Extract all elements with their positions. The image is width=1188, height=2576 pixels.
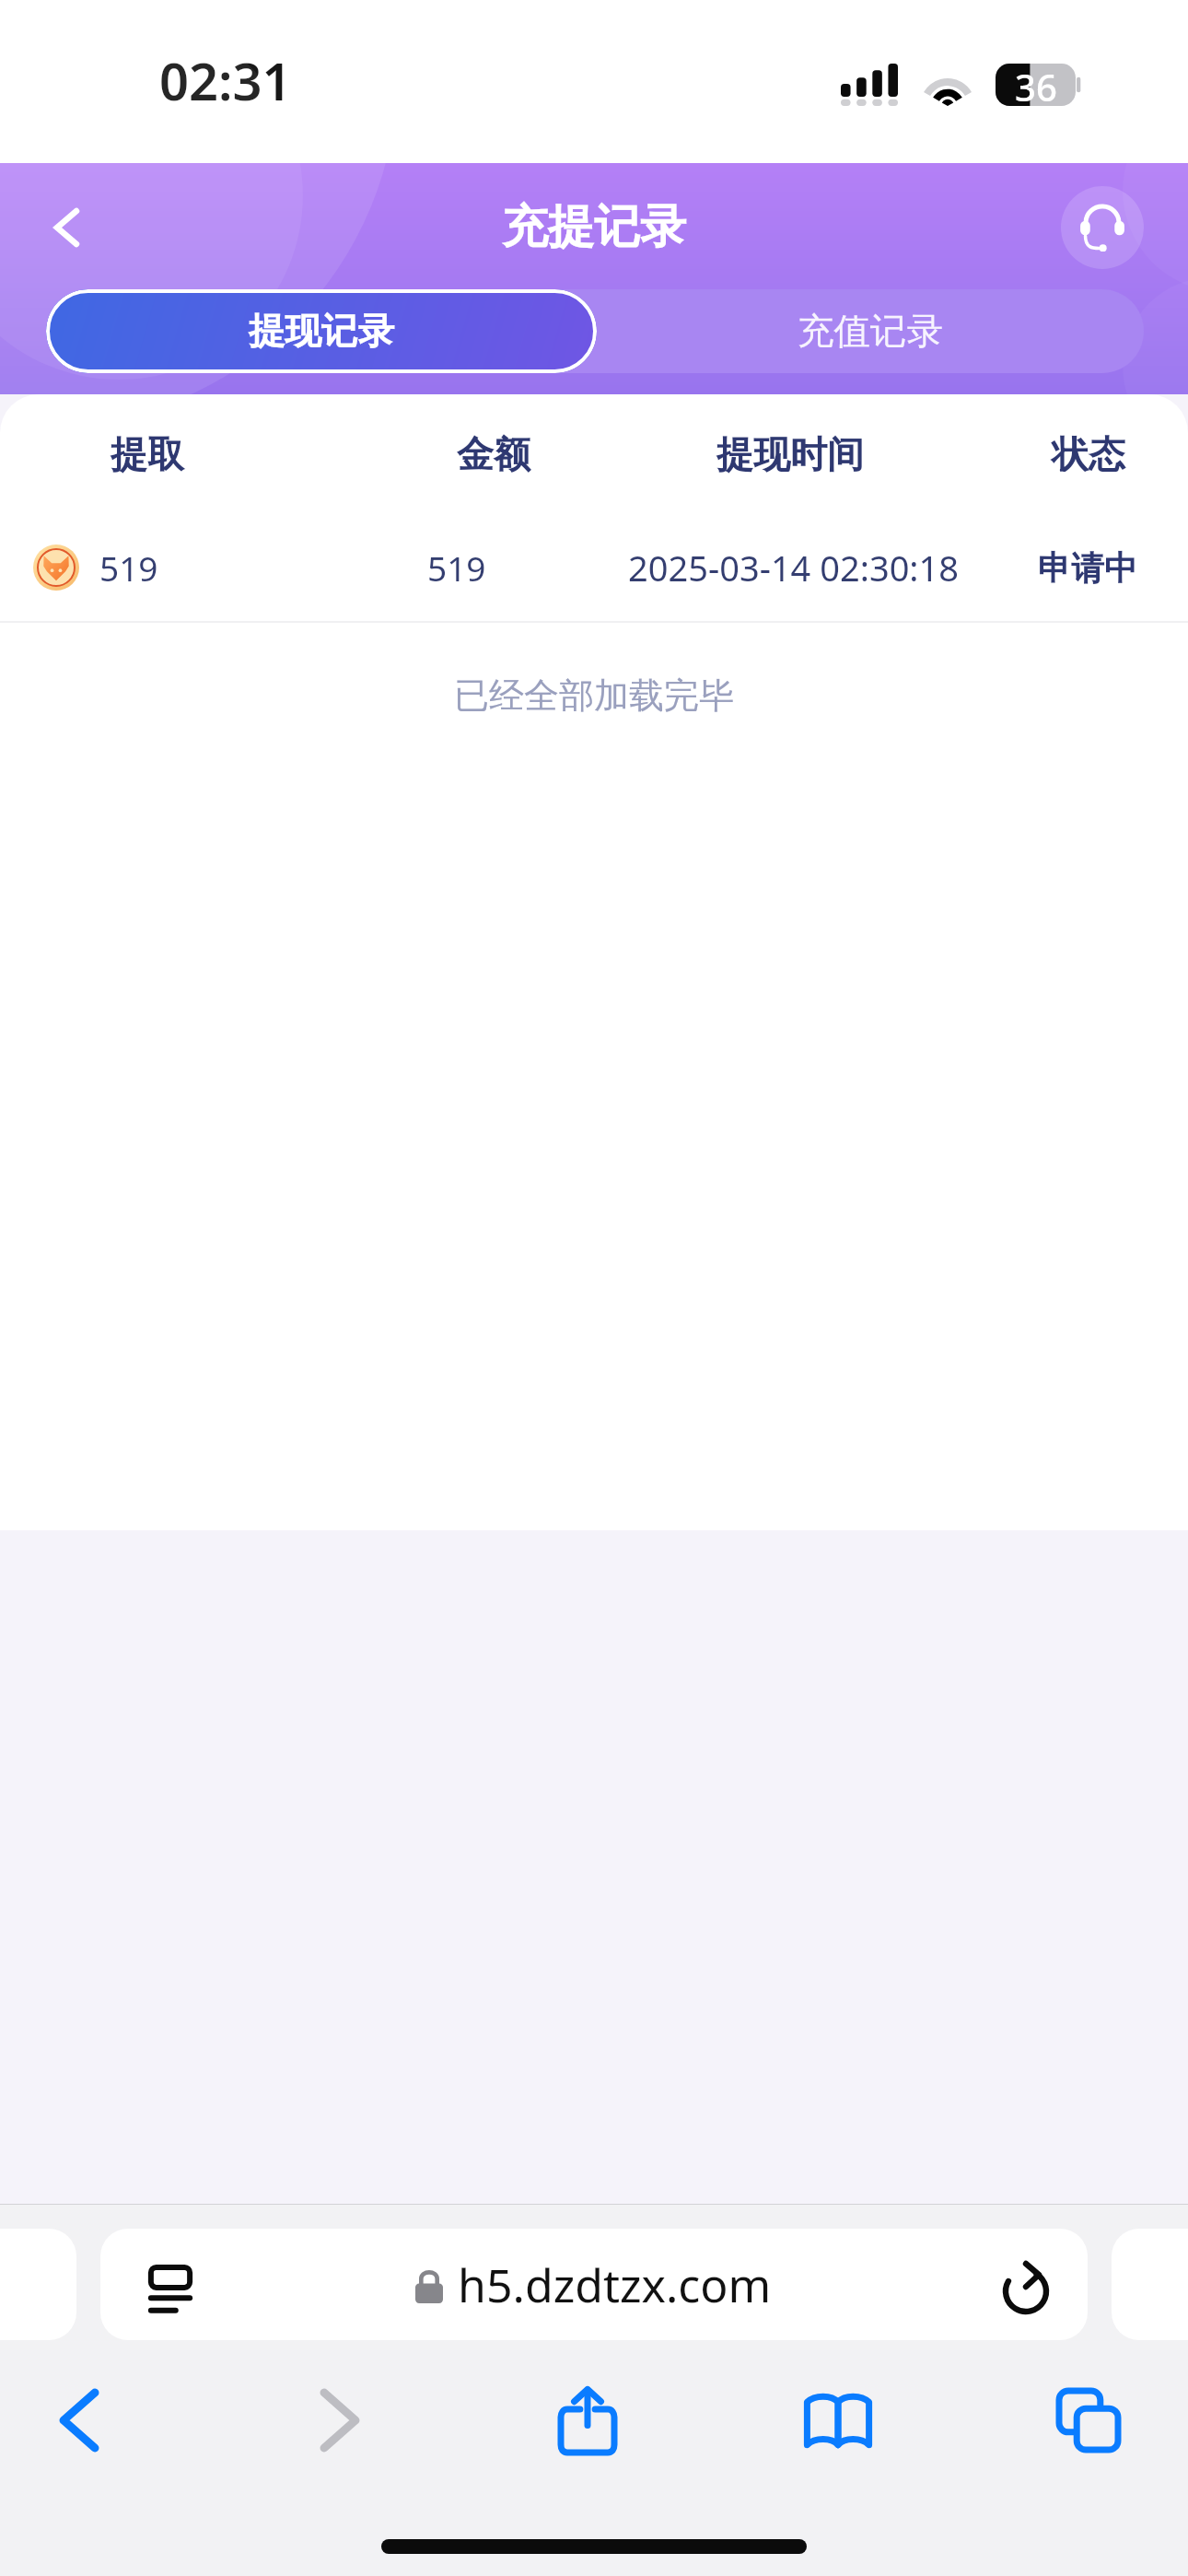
button[interactable]: Customer service bbox=[1061, 186, 1144, 269]
staticText: 充值记录 bbox=[798, 309, 943, 355]
staticText: 金额 bbox=[457, 431, 530, 477]
staticText: 02:31 bbox=[159, 45, 292, 115]
button[interactable]: Back bbox=[15, 2370, 144, 2471]
button[interactable]: 充值记录 bbox=[597, 289, 1144, 373]
button[interactable]: Share bbox=[523, 2370, 652, 2471]
staticText: h5.dzdtzx.com bbox=[458, 2254, 772, 2316]
staticText: 519 bbox=[99, 544, 158, 591]
button[interactable]: Page settings bbox=[100, 2229, 1088, 2340]
button[interactable]: Bookmarks bbox=[774, 2370, 903, 2471]
staticText: 提现时间 bbox=[716, 431, 864, 477]
button[interactable]: 提现记录 bbox=[46, 289, 597, 373]
staticText: 2025-03-14 02:30:18 bbox=[628, 544, 960, 591]
staticText: 519 bbox=[427, 544, 486, 591]
staticText: 状态 bbox=[1052, 431, 1125, 477]
button[interactable]: Back bbox=[33, 194, 99, 261]
staticText: 充提记录 bbox=[502, 198, 686, 256]
staticText: 已经全部加载完毕 bbox=[454, 673, 734, 718]
button[interactable]: 519 bbox=[0, 514, 1188, 621]
staticText: 提取 bbox=[111, 431, 184, 477]
button[interactable]: Tabs bbox=[1024, 2370, 1153, 2471]
button[interactable]: Forward bbox=[275, 2370, 404, 2471]
staticText: 申请中 bbox=[1038, 547, 1137, 589]
staticText: 36 bbox=[1015, 62, 1057, 104]
staticText: 提现记录 bbox=[249, 309, 394, 355]
button[interactable]: Reload bbox=[994, 2254, 1054, 2315]
button[interactable]: Page settings bbox=[140, 2260, 201, 2321]
